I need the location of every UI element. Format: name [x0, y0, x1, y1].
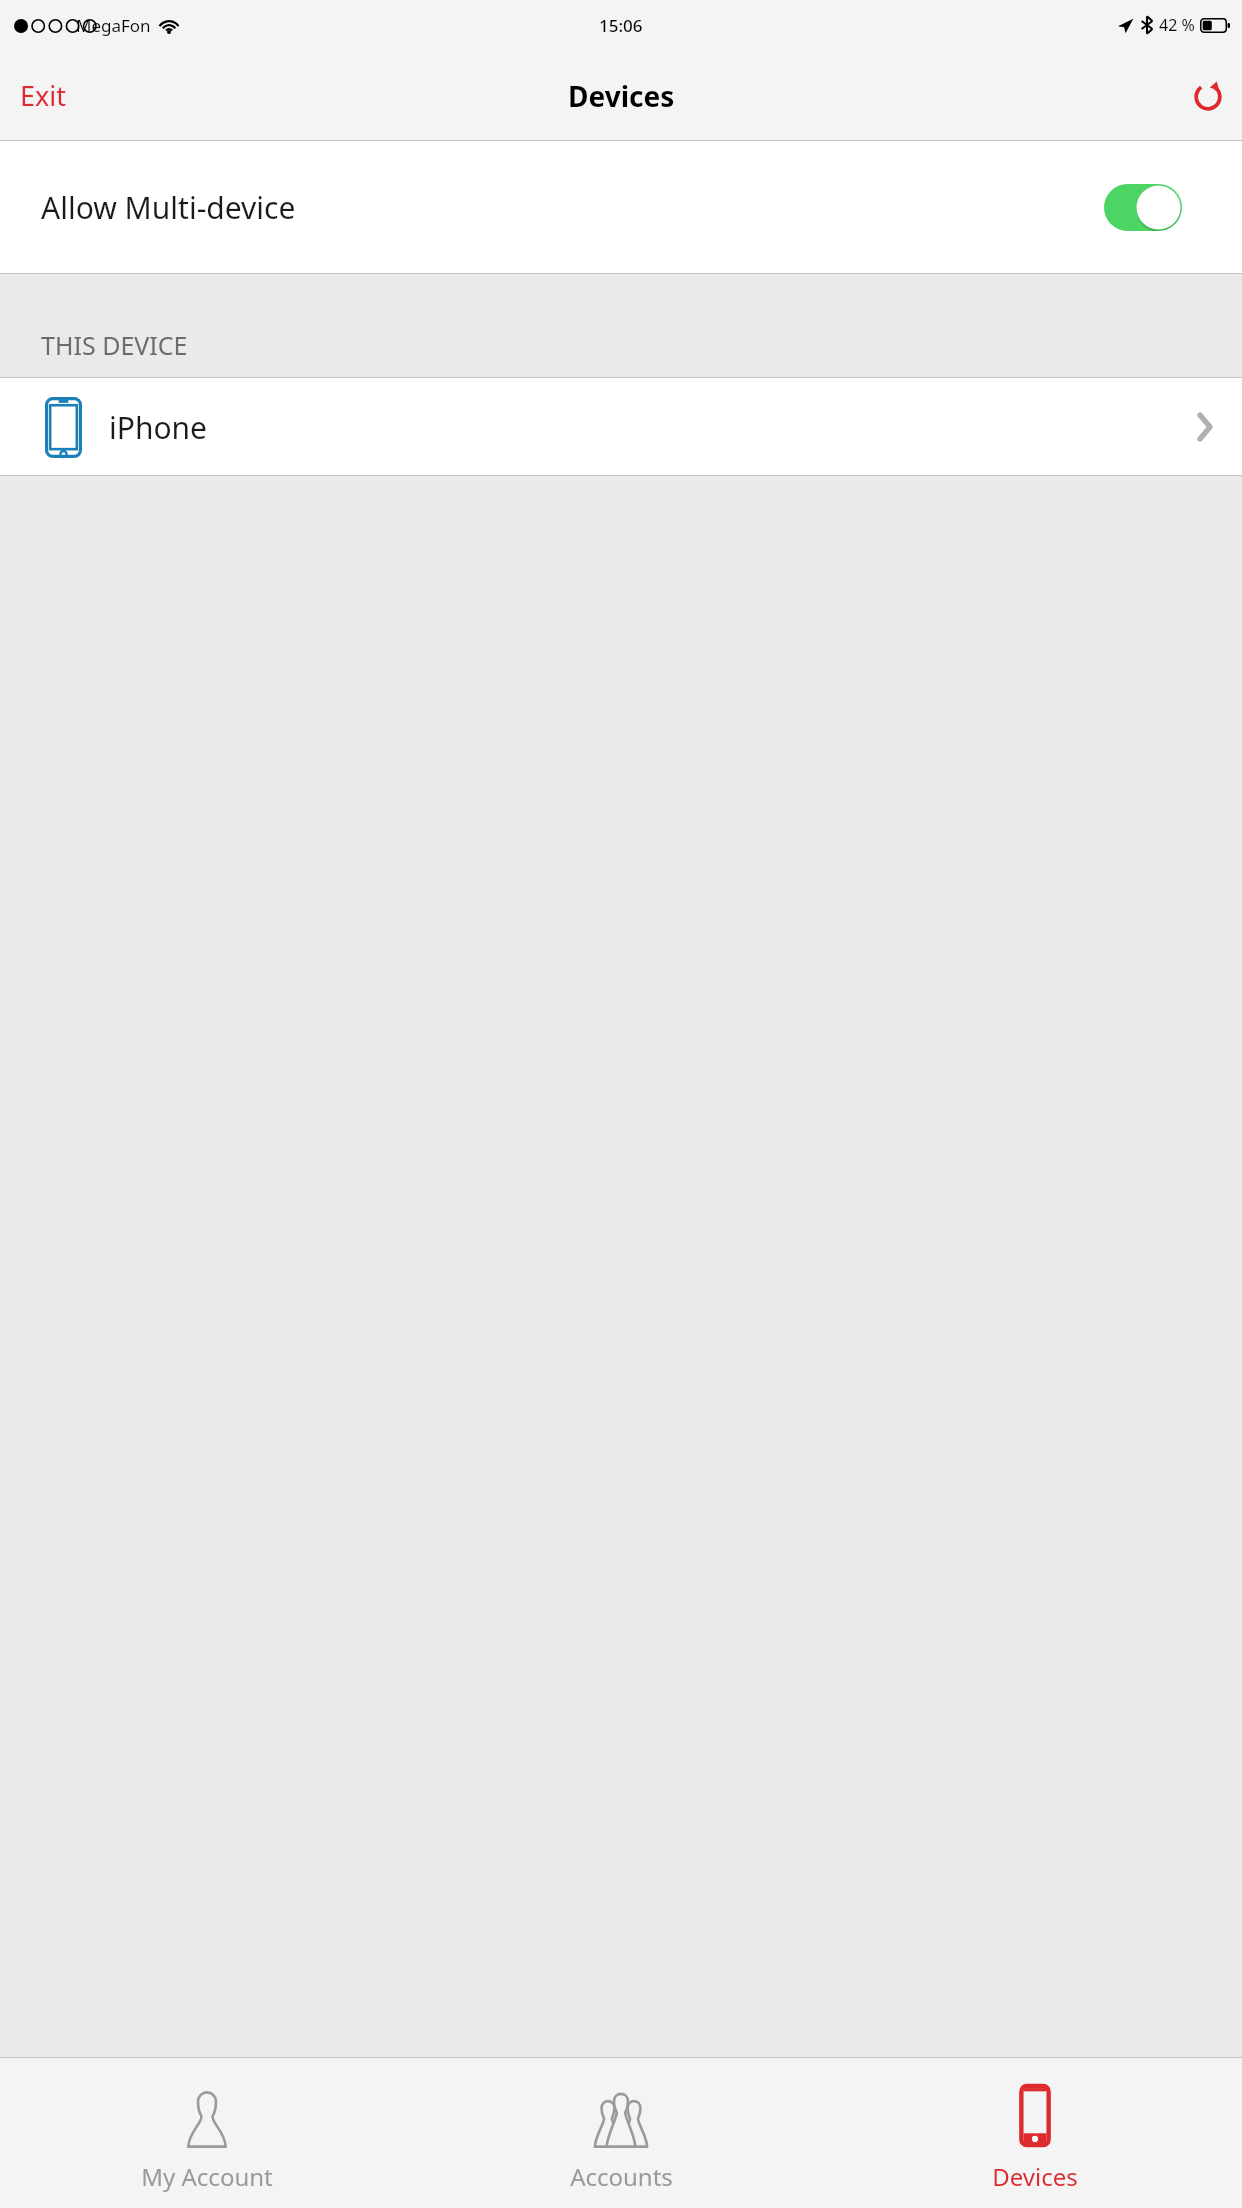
staticText: THIS DEVICE	[41, 328, 188, 362]
staticText: My Account	[141, 2160, 273, 2193]
staticText: iPhone	[109, 407, 208, 448]
button[interactable]: iPhone	[0, 378, 1242, 476]
staticText: 15:06	[599, 14, 643, 37]
staticText: Accounts	[570, 2160, 673, 2193]
button[interactable]: Refresh	[1174, 68, 1242, 124]
staticText: Devices	[992, 2160, 1078, 2193]
button[interactable]: Allow Multi-device toggle	[1104, 184, 1182, 231]
button[interactable]: My Account	[0, 2058, 414, 2208]
staticText: Exit	[20, 77, 67, 114]
button[interactable]: Accounts	[414, 2058, 828, 2208]
button[interactable]: Devices	[828, 2058, 1242, 2208]
staticText: Devices	[568, 77, 675, 115]
staticText: MegaFon	[76, 14, 151, 37]
button[interactable]: Exit	[0, 63, 87, 128]
button[interactable]: Allow Multi-device	[0, 141, 1242, 274]
staticText: 42 %	[1159, 14, 1195, 36]
staticText: Allow Multi-device	[41, 187, 296, 228]
